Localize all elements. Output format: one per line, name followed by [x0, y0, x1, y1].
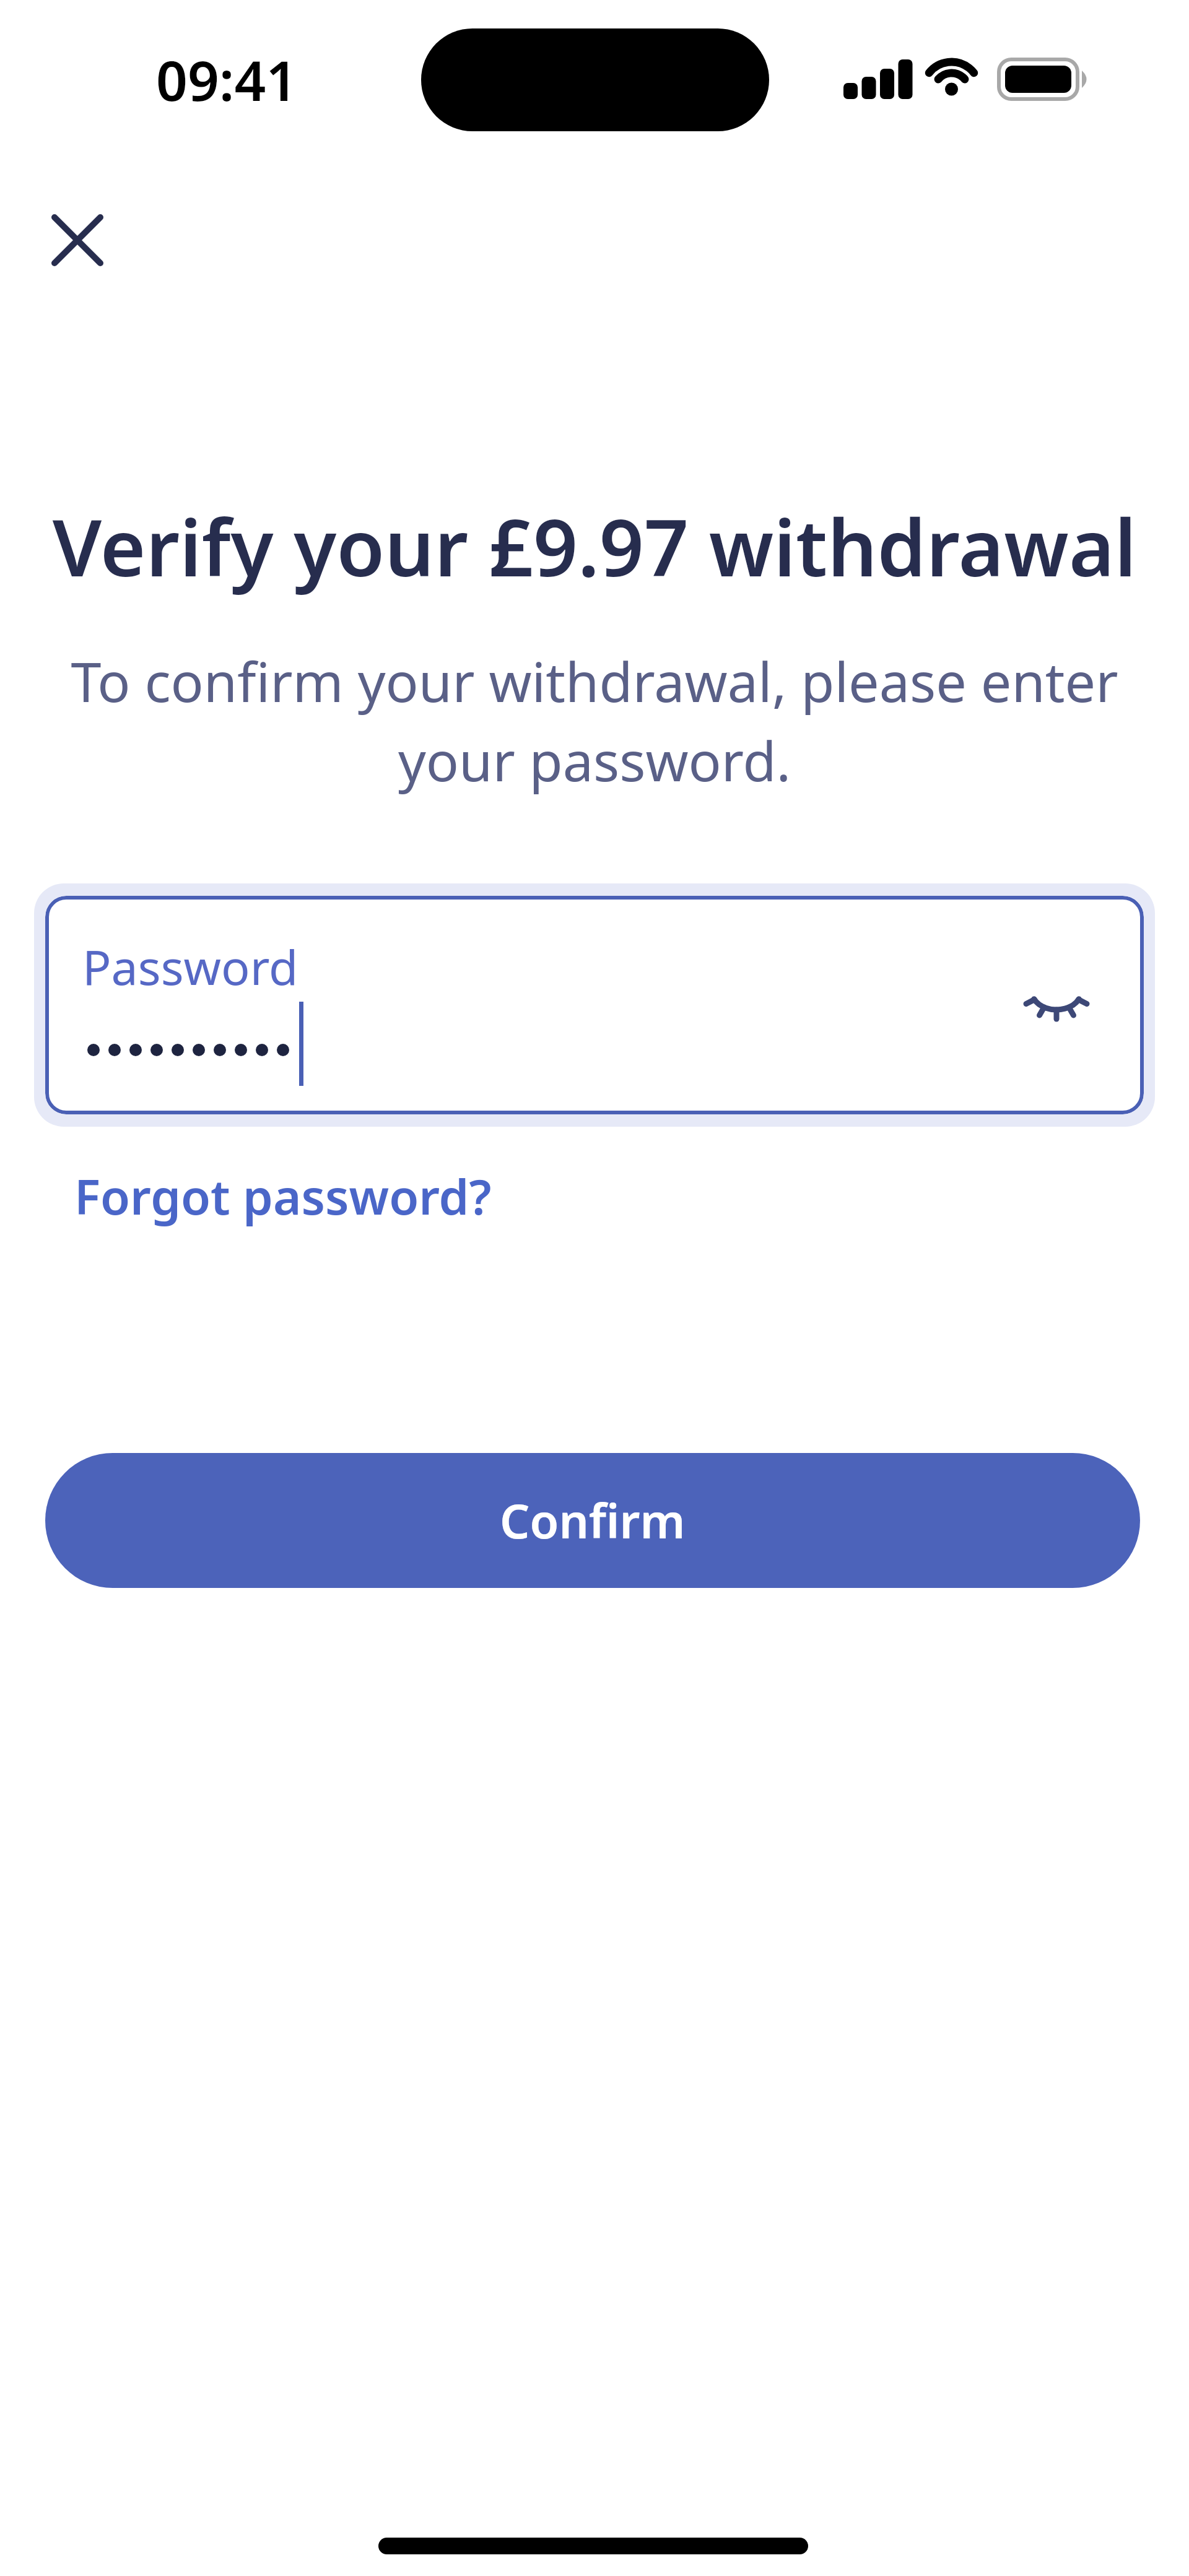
button[interactable]: Confirm	[45, 1453, 1140, 1588]
staticText: Password	[82, 934, 298, 999]
staticText: Forgot password?	[74, 1163, 492, 1229]
staticText: To confirm your withdrawal, please enter…	[0, 644, 1189, 797]
staticText: Confirm	[500, 1488, 686, 1553]
button[interactable]	[43, 206, 111, 274]
staticText: Verify your £9.97 withdrawal	[0, 493, 1189, 599]
button[interactable]: Password	[45, 896, 1144, 1114]
button[interactable]	[1011, 970, 1104, 1044]
staticText: 09:41	[156, 42, 298, 117]
button[interactable]: Forgot password?	[74, 1163, 492, 1229]
